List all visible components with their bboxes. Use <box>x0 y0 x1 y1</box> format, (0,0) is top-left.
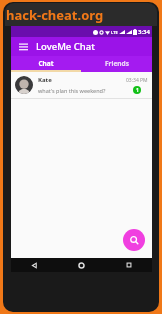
staticText: Friends <box>105 59 129 68</box>
button[interactable]: Chat <box>11 56 81 70</box>
staticText: Kate <box>38 76 52 84</box>
staticText: 03:34 PM <box>126 77 148 84</box>
button[interactable]: Open navigation menu <box>15 39 31 55</box>
button[interactable]: Recent apps <box>105 258 152 272</box>
staticText: 1 <box>136 87 139 94</box>
staticText: LoveMe Chat <box>36 40 95 53</box>
staticText: hack-cheat.org <box>6 6 104 24</box>
button[interactable]: Friends <box>81 56 152 70</box>
staticText: LTE <box>111 30 118 35</box>
button[interactable]: Back <box>11 258 58 272</box>
staticText: what's plan this weekend? <box>38 87 106 94</box>
staticText: Chat <box>38 59 54 68</box>
button[interactable]: Search <box>123 229 145 251</box>
button[interactable]: Kate <box>11 72 152 98</box>
staticText: 3:34 <box>138 28 150 36</box>
button[interactable]: Home <box>58 258 105 272</box>
